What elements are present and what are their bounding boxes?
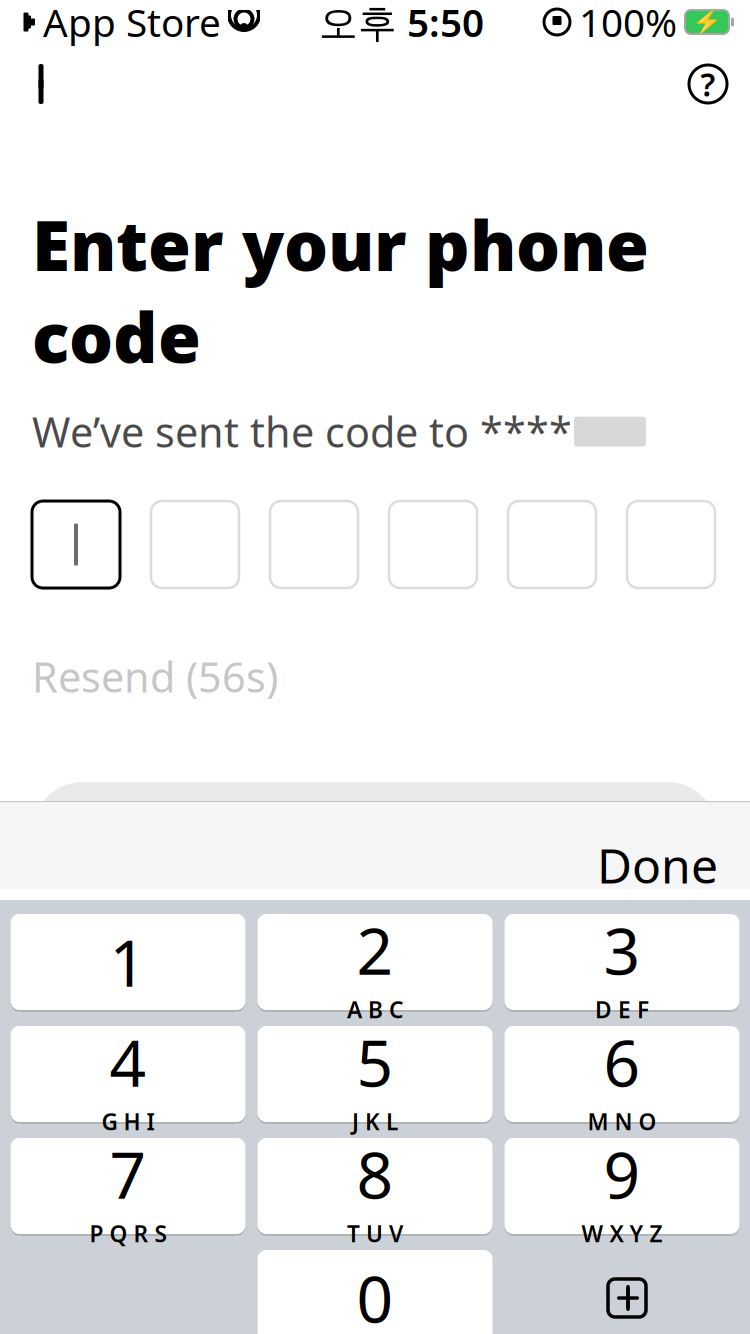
staticText: 5 [356, 1019, 393, 1104]
button[interactable]: Delete [504, 1250, 739, 1334]
staticText: 6 [603, 1019, 640, 1104]
button[interactable]: Done [579, 819, 736, 911]
button[interactable]: Help [672, 48, 744, 120]
button[interactable]: 7 [10, 1136, 245, 1236]
staticText: Enter your phone code [32, 198, 649, 382]
staticText: Resend (56s) [32, 649, 278, 704]
staticText: W X Y Z [581, 1218, 662, 1248]
staticText: T U V [347, 1218, 403, 1248]
staticText: 3 [603, 907, 640, 992]
button[interactable]: Unable to verify? [32, 942, 718, 1000]
staticText: 0 [356, 1255, 393, 1334]
button[interactable]: 9 [504, 1136, 739, 1236]
staticText: 7 [109, 1131, 146, 1216]
staticText: 9 [603, 1131, 640, 1216]
staticText: We’ve sent the code to **** [32, 404, 572, 459]
button[interactable]: 6 [504, 1024, 739, 1124]
staticText: 4 [109, 1019, 146, 1104]
staticText: D E F [595, 994, 649, 1024]
staticText: M N O [587, 1106, 656, 1136]
button[interactable]: 8 [257, 1136, 492, 1236]
staticText: 오후 5:50 [319, 0, 484, 48]
button[interactable]: 0 [257, 1248, 492, 1334]
staticText: G H I [101, 1106, 154, 1136]
staticText: J K L [352, 1106, 398, 1136]
staticText: 100% [579, 0, 677, 48]
button[interactable]: 4 [10, 1024, 245, 1124]
button[interactable]: Back [6, 48, 78, 120]
staticText: P Q R S [89, 1218, 166, 1248]
button[interactable]: 5 [257, 1024, 492, 1124]
staticText: ? [700, 63, 715, 105]
staticText: A B C [347, 994, 403, 1024]
button[interactable]: 1 [10, 912, 245, 1012]
button[interactable]: Resend (56s) [32, 641, 278, 712]
button[interactable]: 3 [504, 912, 739, 1012]
staticText: 1 [109, 919, 146, 1004]
button[interactable]: 2 [257, 912, 492, 1012]
staticText: ⚡ [692, 8, 722, 36]
staticText: App Store [43, 0, 221, 48]
staticText: 8 [356, 1131, 393, 1216]
staticText: 2 [356, 907, 393, 992]
button[interactable]: Log in [32, 782, 718, 884]
staticText: Unable to verify? [189, 942, 561, 1000]
staticText: Done [597, 833, 718, 897]
